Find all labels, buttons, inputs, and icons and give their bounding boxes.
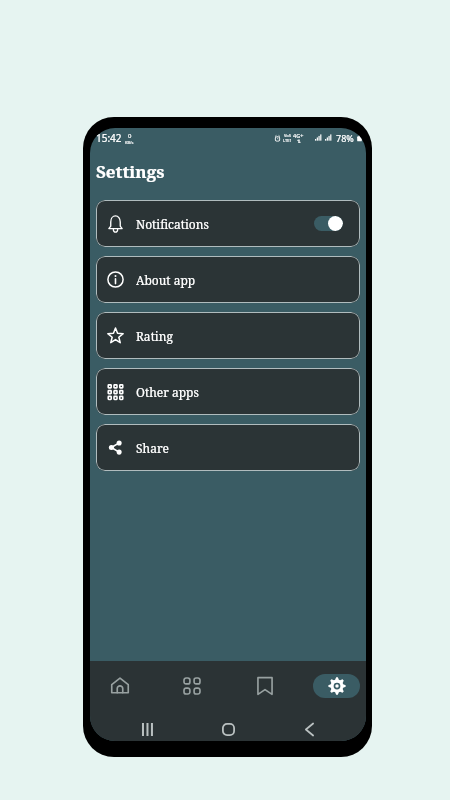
- button[interactable]: Home: [96, 661, 143, 710]
- button[interactable]: Recents: [106, 718, 188, 741]
- button[interactable]: Apps: [168, 661, 215, 710]
- staticText: Settings: [96, 160, 165, 183]
- button[interactable]: Back: [269, 718, 350, 741]
- button[interactable]: Settings: [313, 661, 360, 710]
- button[interactable]: About app: [96, 256, 360, 303]
- staticText: Rating: [136, 328, 173, 344]
- staticText: LTE1: [283, 138, 292, 143]
- staticText: Share: [136, 440, 169, 456]
- button[interactable]: Other apps: [96, 368, 360, 415]
- staticText: 0: [128, 132, 132, 140]
- staticText: ⇅: [297, 139, 301, 144]
- staticText: 78%: [336, 132, 354, 144]
- staticText: KB/s: [125, 140, 134, 145]
- button[interactable]: Home: [188, 718, 269, 741]
- button[interactable]: Toggle notifications: [314, 216, 343, 231]
- button[interactable]: Bookmarks: [241, 661, 288, 710]
- staticText: Notifications: [136, 216, 209, 232]
- staticText: Other apps: [136, 384, 199, 400]
- staticText: 15:42: [96, 131, 122, 145]
- staticText: About app: [136, 272, 196, 288]
- staticText: 4G+: [293, 132, 304, 139]
- staticText: VoS: [284, 133, 291, 138]
- button[interactable]: Notifications: [96, 200, 360, 247]
- button[interactable]: Share: [96, 424, 360, 471]
- button[interactable]: Rating: [96, 312, 360, 359]
